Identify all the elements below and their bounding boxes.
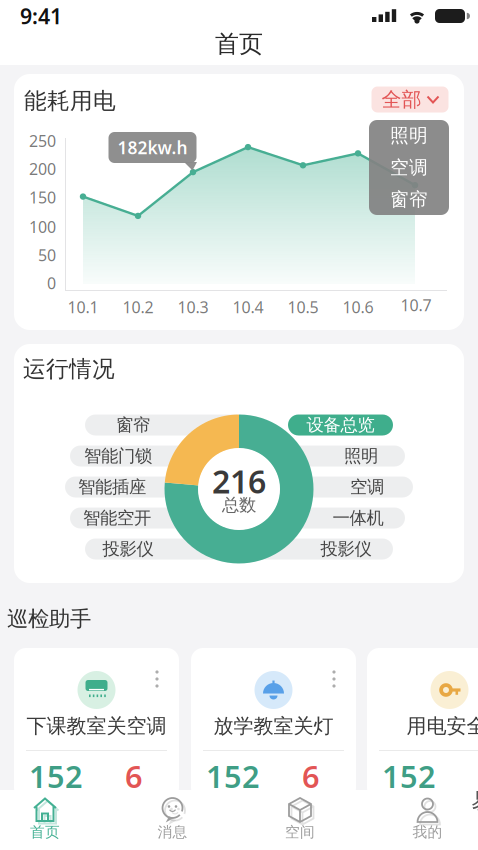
staticText: 152 (29, 756, 83, 796)
staticText: 投影仪 (320, 538, 371, 560)
button[interactable]: 全部 (371, 86, 448, 112)
staticText: 智能空开 (83, 507, 151, 529)
staticText: 10.1 (67, 296, 98, 318)
staticText: 一体机 (332, 507, 383, 529)
button[interactable]: 消息 (142, 790, 202, 842)
staticText: 投影仪 (102, 538, 153, 560)
staticText: 10.5 (287, 296, 318, 318)
staticText: 10.2 (122, 296, 153, 318)
staticText: 运行情况 (23, 355, 115, 383)
button[interactable]: 照明 (369, 120, 449, 151)
staticText: 空调 (350, 476, 384, 498)
staticText: 9:41 (20, 2, 62, 30)
staticText: 总数 (222, 494, 256, 516)
staticText: 窗帘 (116, 414, 150, 436)
button[interactable]: 空间 (270, 790, 330, 842)
staticText: 窗帘 (390, 188, 428, 211)
staticText: 首页 (215, 29, 263, 59)
button[interactable]: 智能空开 (70, 507, 240, 528)
button[interactable]: 我的 (397, 790, 457, 842)
staticText: 全部 (381, 87, 421, 112)
staticText: 100 (29, 216, 56, 237)
button[interactable]: 投影仪 (85, 538, 245, 559)
staticText: 下课教室关空调 (26, 714, 166, 738)
staticText: 250 (29, 130, 56, 151)
button[interactable]: 智能门锁 (70, 445, 240, 466)
staticText: 216 (212, 460, 266, 502)
staticText: 巡检助手 (7, 606, 91, 632)
staticText: 用电安全 (406, 714, 478, 738)
button[interactable]: 一体机 (238, 507, 405, 528)
staticText: 首页 (30, 823, 60, 841)
staticText: 150 (29, 187, 56, 208)
button[interactable]: 放学教室关灯 (191, 648, 356, 800)
staticText: 10.6 (342, 296, 373, 318)
staticText: 能耗用电 (24, 87, 116, 115)
button[interactable]: 窗帘 (85, 414, 245, 435)
button[interactable]: 窗帘 (369, 184, 449, 215)
staticText: 10.3 (177, 296, 208, 318)
staticText: 空间 (285, 823, 315, 841)
staticText: 6 (302, 756, 320, 796)
button[interactable]: 空调 (369, 152, 449, 183)
staticText: 空调 (390, 156, 428, 179)
button[interactable]: 智能插座 (65, 476, 235, 497)
staticText: 182kw.h (117, 136, 187, 159)
button[interactable]: 首页 (15, 790, 75, 842)
button[interactable]: 设备总览 (288, 414, 393, 435)
staticText: 152 (382, 756, 436, 796)
staticText: 照明 (390, 124, 428, 147)
staticText: 智能门锁 (84, 445, 152, 467)
staticText: 0 (47, 272, 56, 294)
staticText: 50 (38, 244, 56, 266)
staticText: 智能插座 (78, 476, 146, 498)
staticText: 200 (29, 158, 56, 179)
button[interactable]: 下课教室关空调 (14, 648, 179, 800)
staticText: 照明 (344, 445, 378, 467)
staticText: 消息 (157, 823, 187, 841)
button[interactable]: 用电安全 (367, 648, 478, 800)
staticText: 我的 (412, 823, 442, 841)
staticText: 10.7 (400, 294, 431, 316)
staticText: 易 (471, 787, 478, 815)
staticText: 放学教室关灯 (213, 714, 333, 738)
button[interactable]: 空调 (243, 476, 413, 497)
staticText: 10.4 (232, 296, 263, 318)
button[interactable]: 照明 (238, 445, 405, 466)
button[interactable]: 投影仪 (233, 538, 393, 559)
staticText: 6 (125, 756, 143, 796)
staticText: 设备总览 (306, 414, 374, 436)
staticText: 152 (206, 756, 260, 796)
